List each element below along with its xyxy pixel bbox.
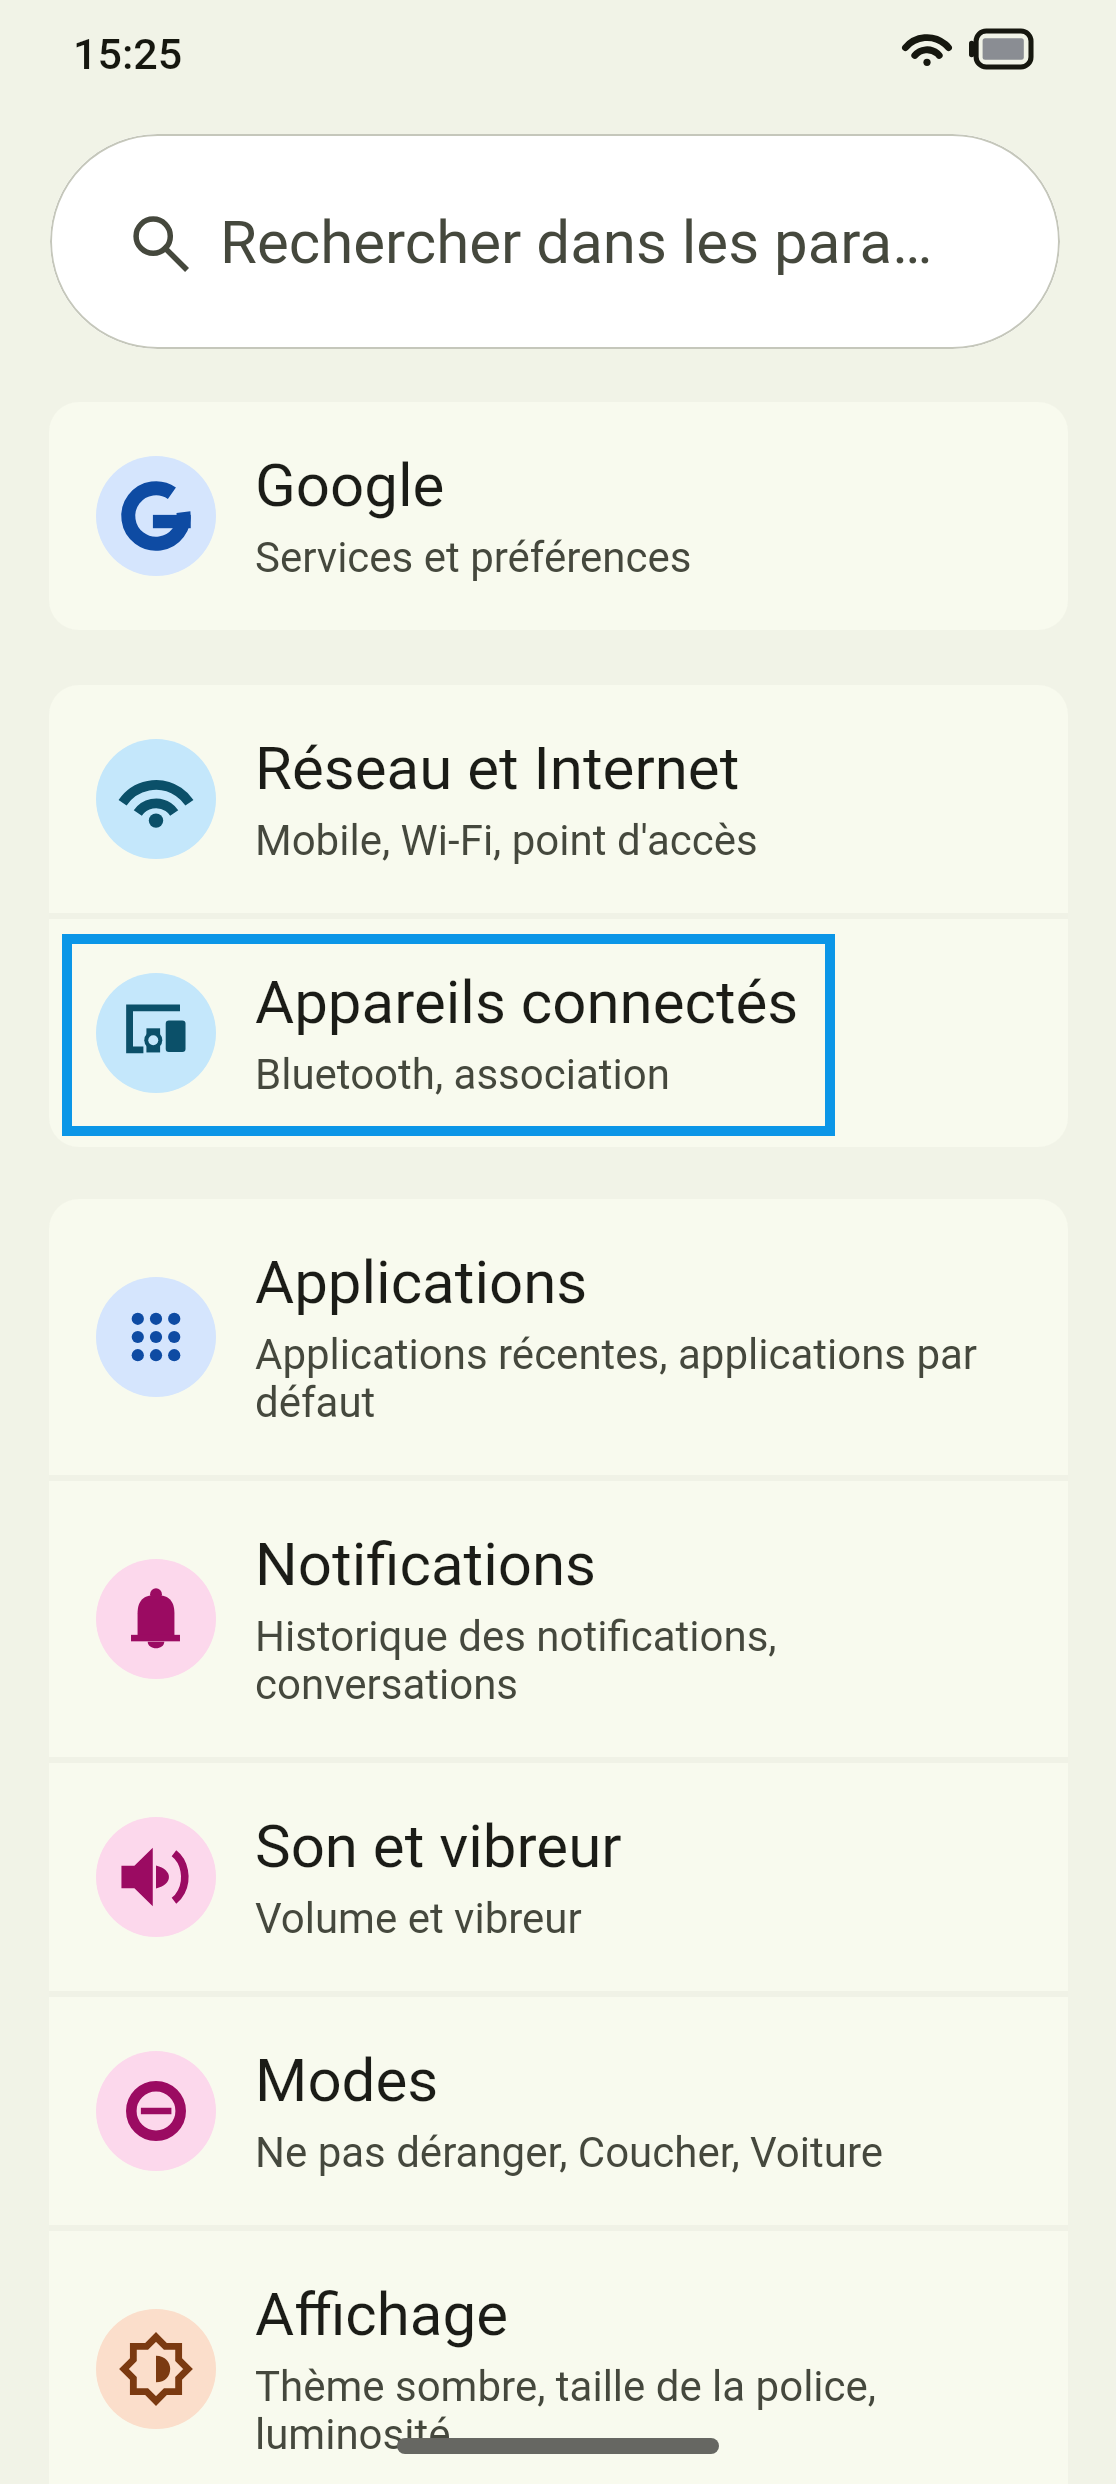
other: Notifications	[96, 1559, 216, 1679]
other: Apps	[96, 1277, 216, 1397]
staticText: Modes	[255, 2045, 439, 2115]
staticText: Ne pas déranger, Coucher, Voiture	[255, 2128, 884, 2177]
staticText: Bluetooth, association	[255, 1050, 670, 1099]
staticText: Historique des notifications, conversati…	[255, 1612, 990, 1709]
staticText: Appareils connectés	[255, 967, 799, 1037]
staticText: Son et vibreur	[255, 1811, 622, 1881]
other: Modes	[96, 2051, 216, 2171]
staticText: Notifications	[255, 1529, 597, 1599]
button[interactable]: Apps	[49, 1199, 1068, 1475]
staticText: Affichage	[255, 2279, 508, 2349]
staticText: Rechercher dans les para…	[220, 207, 933, 277]
staticText: Applications récentes, applications par …	[255, 1330, 990, 1427]
other: Display	[96, 2309, 216, 2429]
button[interactable]: Notifications	[49, 1481, 1068, 1757]
button[interactable]: Network and internet	[49, 685, 1068, 913]
button[interactable]: Google settings	[49, 402, 1068, 630]
staticText: Réseau et Internet	[255, 733, 740, 803]
button[interactable]: Display	[49, 2231, 1068, 2484]
other: Google settings	[96, 456, 216, 576]
staticText: Mobile, Wi-Fi, point d'accès	[255, 816, 758, 865]
button[interactable]: Rechercher dans les para…	[50, 134, 1060, 349]
other: Network and internet	[96, 739, 216, 859]
staticText: Applications	[255, 1247, 588, 1317]
button[interactable]: Modes	[49, 1997, 1068, 2225]
other: Connected devices	[96, 973, 216, 1093]
staticText: Volume et vibreur	[255, 1894, 582, 1943]
staticText: Google	[255, 450, 445, 520]
other: Sound	[96, 1817, 216, 1937]
staticText: 15:25	[73, 29, 183, 79]
button[interactable]: Connected devices	[49, 919, 1068, 1147]
staticText: Services et préférences	[255, 533, 692, 582]
staticText: Thème sombre, taille de la police, lumin…	[255, 2362, 990, 2459]
button[interactable]: Sound	[49, 1763, 1068, 1991]
